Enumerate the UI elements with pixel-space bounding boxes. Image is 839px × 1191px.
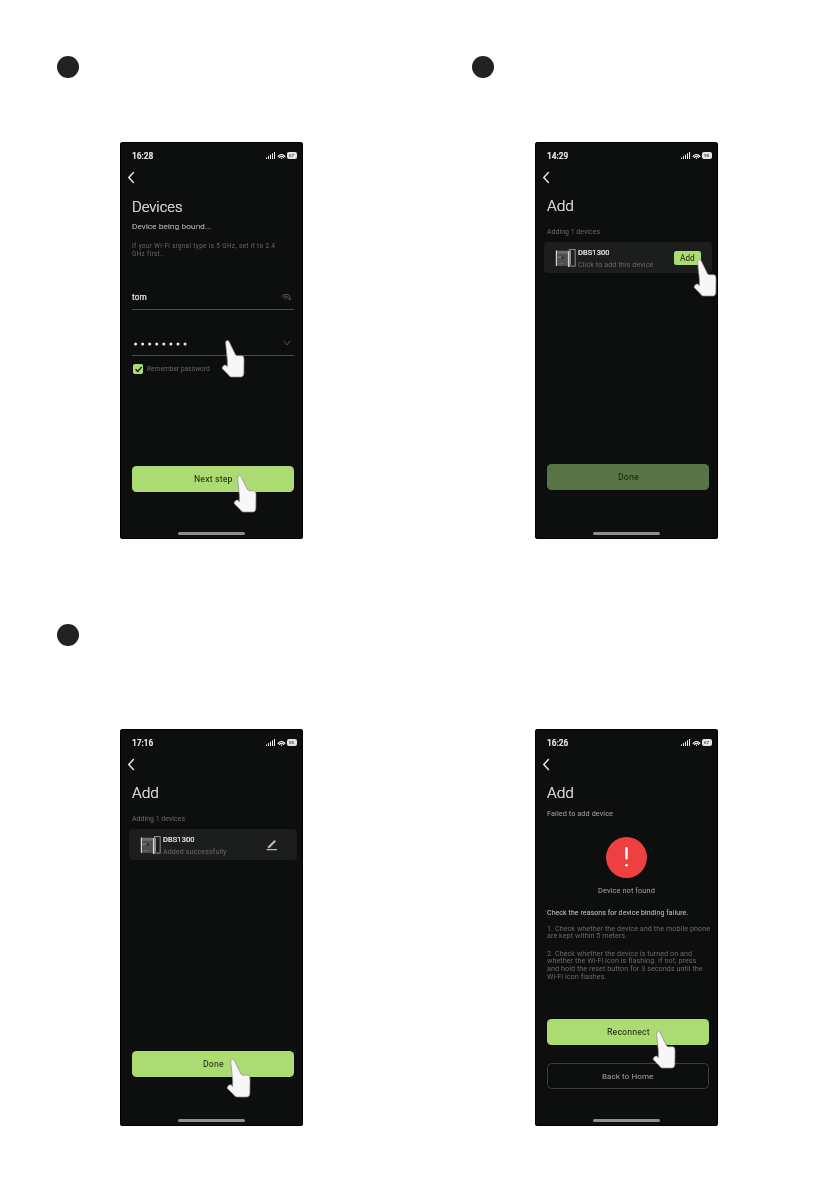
staticText: Check the reasons for device binding fai… xyxy=(547,909,689,917)
staticText: 1. Check whether the device and the mobi… xyxy=(547,924,711,940)
staticText: Added successfully xyxy=(163,847,227,855)
button[interactable]: Remember password xyxy=(133,363,210,374)
staticText: 98 xyxy=(704,153,710,158)
button[interactable]: Reconnect xyxy=(547,1019,709,1045)
staticText: Reconnect xyxy=(607,1027,650,1037)
staticText: Add xyxy=(680,253,695,263)
staticText: 55 xyxy=(289,740,295,745)
button[interactable]: DBS1300 xyxy=(544,242,712,273)
staticText: Remember password xyxy=(147,365,210,373)
staticText: Done xyxy=(618,472,639,482)
staticText: DBS1300 xyxy=(163,835,195,844)
button[interactable]: DBS1300 xyxy=(129,829,297,860)
staticText: Device not found xyxy=(598,886,655,895)
staticText: Device being bound... xyxy=(132,222,212,231)
staticText: 67 xyxy=(704,740,710,745)
staticText: 2. Check whether the device is turned on… xyxy=(547,949,703,981)
staticText: Back to Home xyxy=(602,1072,654,1081)
button[interactable]: Back xyxy=(535,753,557,775)
staticText: Add xyxy=(132,784,159,802)
staticText: 67 xyxy=(289,153,295,158)
staticText: Add xyxy=(547,784,574,802)
button[interactable]: Back xyxy=(120,166,142,188)
staticText: Next step xyxy=(194,474,233,484)
staticText: Add xyxy=(547,197,574,215)
staticText: Done xyxy=(203,1059,224,1069)
button[interactable]: Show password xyxy=(284,341,290,345)
staticText: Devices xyxy=(132,198,183,215)
button[interactable]: Next step xyxy=(132,466,294,492)
button[interactable]: Add xyxy=(674,251,701,265)
staticText: If your Wi-Fi signal type is 5 GHz, set … xyxy=(132,242,276,258)
button[interactable]: Done xyxy=(132,1051,294,1077)
button[interactable]: Back xyxy=(535,166,557,188)
staticText: Adding 1 devices xyxy=(547,228,601,236)
staticText: 17:16 xyxy=(132,738,154,748)
button[interactable]: Done xyxy=(547,464,709,490)
staticText: 16:28 xyxy=(132,151,154,161)
staticText: Failed to add device xyxy=(547,809,614,818)
staticText: Adding 1 devices xyxy=(132,815,186,823)
staticText: tom xyxy=(132,292,147,302)
button[interactable]: Back xyxy=(120,753,142,775)
button[interactable]: Back to Home xyxy=(547,1063,709,1089)
staticText: 16:26 xyxy=(547,738,569,748)
staticText: 14:29 xyxy=(547,151,569,161)
button[interactable]: Rename device xyxy=(265,838,278,851)
staticText: Click to add this device xyxy=(578,260,654,268)
staticText: DBS1300 xyxy=(578,248,610,257)
